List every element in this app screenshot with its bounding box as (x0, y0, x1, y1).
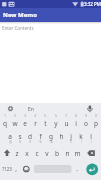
staticText: & (50, 140, 53, 144)
staticText: New Memo (3, 11, 37, 19)
staticText: 3:32 PM (84, 1, 101, 7)
staticText: u (64, 119, 69, 128)
staticText: % (39, 140, 42, 144)
staticText: 7 (65, 114, 67, 118)
staticText: h (59, 132, 64, 141)
staticText: ) (91, 140, 92, 144)
staticText: 2 (14, 114, 16, 118)
staticText: d (28, 132, 32, 141)
staticText: Enter Contents (2, 25, 34, 31)
staticText: - (61, 140, 62, 144)
staticText: o (84, 119, 88, 128)
staticText: 4 (34, 114, 36, 118)
staticText: 3 (24, 114, 26, 118)
staticText: j (70, 132, 72, 141)
staticText: i (75, 119, 77, 128)
staticText: # (19, 140, 21, 144)
staticText: l (90, 132, 92, 141)
staticText: q (3, 119, 7, 128)
staticText: ?123 (2, 166, 12, 172)
staticText: ( (81, 140, 82, 144)
staticText: + (70, 140, 72, 144)
staticText: r (34, 119, 37, 128)
staticText: 1 (4, 114, 6, 118)
staticText: p (94, 119, 98, 128)
staticText: e (23, 119, 27, 128)
staticText: 0 (95, 114, 97, 118)
staticText: k (79, 132, 83, 141)
staticText: n (65, 149, 70, 158)
staticText: g (49, 132, 53, 141)
staticText: w (12, 119, 18, 128)
staticText: , (15, 164, 17, 173)
staticText: 8 (75, 114, 77, 118)
staticText: m (74, 149, 81, 158)
staticText: t (44, 119, 47, 128)
staticText: . (76, 164, 78, 173)
staticText: s (18, 132, 22, 141)
staticText: @ (9, 140, 12, 144)
staticText: y (54, 119, 58, 128)
staticText: 9 (85, 114, 87, 118)
staticText: En (28, 106, 34, 113)
staticText: b (55, 149, 59, 158)
staticText: 6 (55, 114, 57, 118)
staticText: a (8, 132, 12, 141)
staticText: f (39, 132, 42, 141)
staticText: 5 (44, 114, 46, 118)
staticText: $ (29, 140, 31, 144)
staticText: c (35, 149, 39, 158)
staticText: x (25, 149, 29, 158)
staticText: z (15, 149, 19, 158)
staticText: v (45, 149, 49, 158)
